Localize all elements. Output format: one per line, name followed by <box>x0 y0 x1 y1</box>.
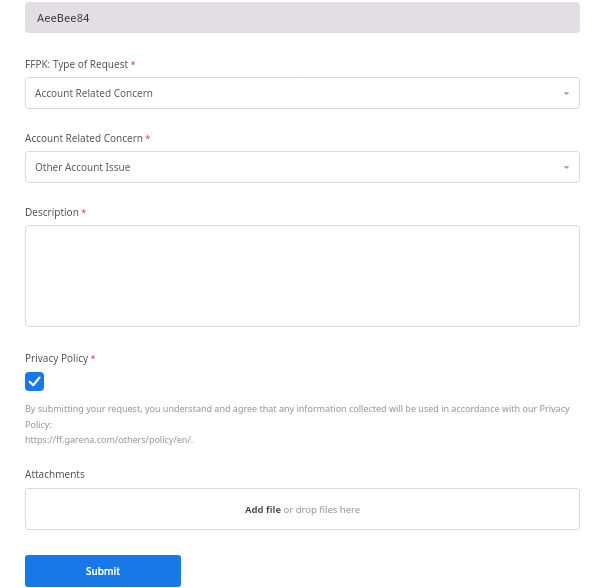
staticText: https://ff.garena.com/others/policy/en/. <box>25 433 194 445</box>
button[interactable]: Accept Privacy Policy <box>25 372 44 391</box>
staticText: FFPK: Type of Request * <box>25 57 136 71</box>
button[interactable]: Submit <box>25 555 181 587</box>
staticText: By submitting your request, you understa… <box>25 402 580 431</box>
staticText: AeeBee84 <box>37 10 90 25</box>
staticText: Add file or drop files here <box>245 503 361 516</box>
staticText: Attachments <box>25 467 85 481</box>
button[interactable]: AeeBee84 <box>25 2 580 33</box>
button[interactable] <box>25 225 580 327</box>
staticText: Account Related Concern <box>35 86 153 100</box>
staticText: Account Related Concern * <box>25 131 151 145</box>
staticText: Submit <box>86 564 120 578</box>
staticText: Privacy Policy * <box>25 351 96 365</box>
button[interactable]: Other Account Issue <box>25 151 580 183</box>
staticText: Other Account Issue <box>35 160 131 174</box>
button[interactable]: Add file or drop files here <box>25 488 580 530</box>
staticText: Description * <box>25 205 87 219</box>
button[interactable]: Account Related Concern <box>25 77 580 109</box>
